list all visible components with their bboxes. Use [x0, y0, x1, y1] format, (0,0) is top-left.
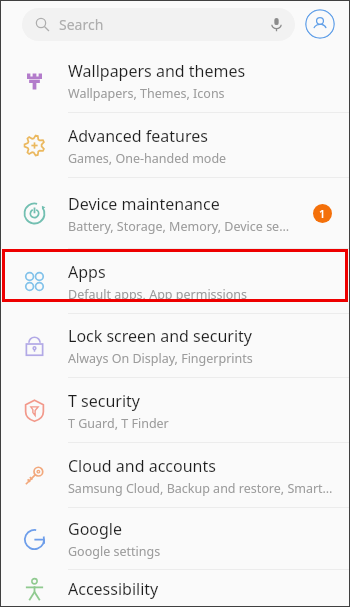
staticText: Samsung Cloud, Backup and restore, Smart… — [68, 480, 333, 497]
button[interactable]: Lock screen and security — [0, 314, 350, 378]
staticText: 1 — [319, 206, 326, 221]
button[interactable]: Cloud and accounts — [0, 443, 350, 508]
staticText: Wallpapers, Themes, Icons — [68, 85, 225, 102]
staticText: Apps — [68, 261, 106, 283]
staticText: Advanced features — [68, 125, 208, 147]
staticText: Lock screen and security — [68, 325, 252, 347]
staticText: Always On Display, Fingerprints — [68, 350, 253, 367]
staticText: Search — [59, 15, 104, 34]
button[interactable]: Advanced features — [0, 113, 350, 178]
staticText: Accessibility — [68, 578, 159, 600]
button[interactable]: Wallpapers and themes — [0, 48, 350, 113]
button[interactable]: Device maintenance — [0, 178, 350, 249]
other: Voice search — [269, 17, 284, 32]
button[interactable]: T security — [0, 378, 350, 443]
button[interactable]: Accessibility — [0, 570, 350, 607]
staticText: Default apps, App permissions — [68, 286, 248, 303]
staticText: Battery, Storage, Memory, Device se… — [68, 218, 290, 235]
button[interactable]: Account — [305, 9, 335, 39]
staticText: Cloud and accounts — [68, 455, 216, 477]
staticText: Device maintenance — [68, 193, 220, 215]
button[interactable]: Google — [0, 508, 350, 570]
staticText: Google settings — [68, 543, 161, 560]
staticText: Games, One-handed mode — [68, 150, 227, 167]
button[interactable]: Search — [22, 8, 295, 41]
button[interactable]: Apps — [0, 249, 350, 314]
staticText: T Guard, T Finder — [68, 415, 169, 432]
staticText: Wallpapers and themes — [68, 60, 246, 82]
staticText: Google — [68, 518, 123, 540]
staticText: T security — [68, 390, 140, 412]
